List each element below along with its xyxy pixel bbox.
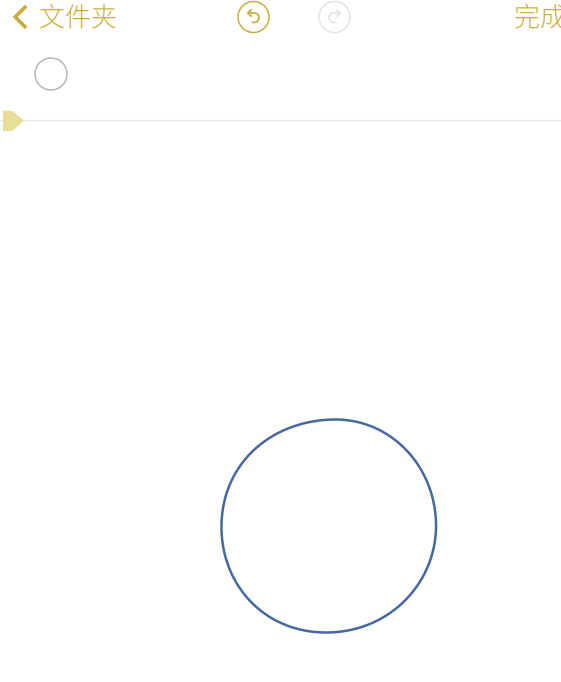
button[interactable]: 文件夹 [7, 0, 123, 34]
button[interactable]: Shape tool [31, 54, 71, 94]
staticText: 文件夹 [39, 0, 117, 34]
staticText: 完成 [514, 0, 561, 34]
button[interactable]: 完成 [508, 0, 561, 34]
button[interactable]: Undo [238, 1, 269, 32]
button[interactable]: Redo [319, 1, 350, 32]
